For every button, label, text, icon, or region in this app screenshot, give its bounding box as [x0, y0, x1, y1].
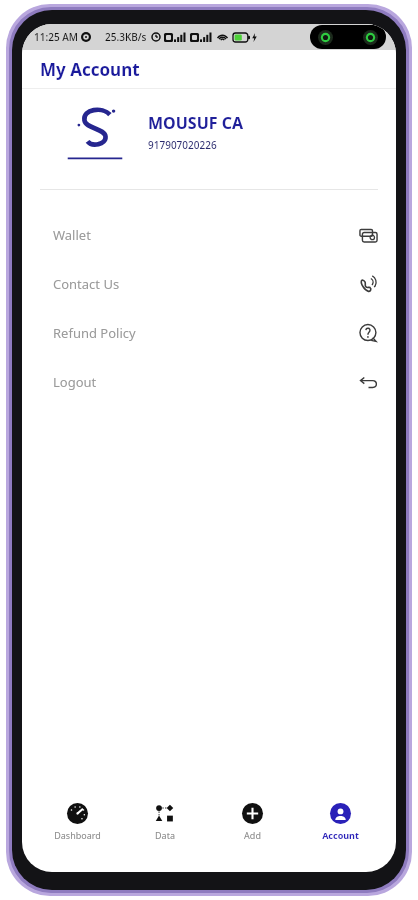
- staticText: MOUSUF CA: [148, 112, 244, 134]
- staticText: 11:25 AM: [34, 30, 78, 44]
- staticText: Wallet: [53, 226, 91, 244]
- button[interactable]: Wallet: [22, 220, 396, 250]
- button[interactable]: Data: [121, 797, 208, 847]
- button[interactable]: Account: [296, 797, 384, 847]
- staticText: Account: [322, 829, 359, 841]
- staticText: My Account: [40, 58, 140, 81]
- staticText: 917907020226: [148, 138, 217, 152]
- staticText: Contact Us: [53, 275, 120, 293]
- button[interactable]: Dashboard: [34, 797, 121, 847]
- staticText: 25.3KB/s: [105, 30, 147, 44]
- staticText: Logout: [53, 373, 97, 391]
- button[interactable]: Logout: [22, 367, 396, 397]
- button[interactable]: Contact Us: [22, 269, 396, 299]
- staticText: Dashboard: [54, 829, 101, 841]
- staticText: Add: [244, 829, 261, 841]
- staticText: Data: [155, 829, 175, 841]
- button[interactable]: Refund Policy: [22, 318, 396, 348]
- staticText: Refund Policy: [53, 324, 136, 342]
- button[interactable]: MOUSUF CA: [40, 103, 378, 161]
- button[interactable]: Add: [208, 797, 296, 847]
